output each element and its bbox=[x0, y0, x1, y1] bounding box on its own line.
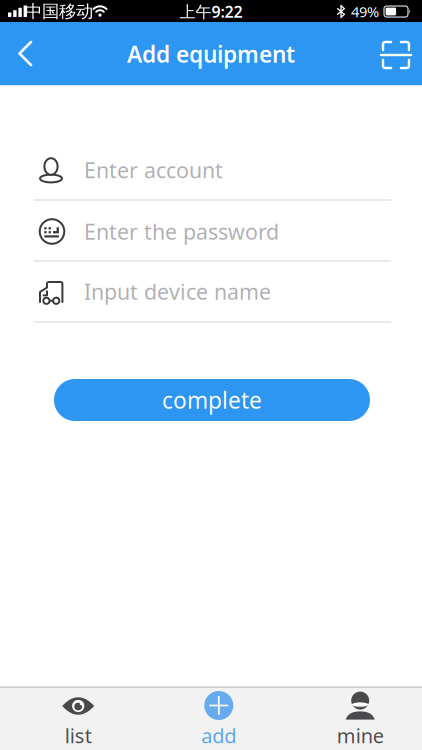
button[interactable]: Scan QR code bbox=[379, 38, 413, 72]
staticText: add bbox=[201, 722, 236, 749]
button[interactable]: list bbox=[18, 686, 138, 750]
staticText: Input device name bbox=[84, 277, 271, 306]
button[interactable]: complete bbox=[54, 379, 370, 421]
staticText: mine bbox=[337, 722, 384, 749]
staticText: Enter account bbox=[84, 156, 223, 184]
staticText: 上午9:22 bbox=[179, 1, 242, 22]
staticText: Add equipment bbox=[127, 39, 295, 69]
staticText: complete bbox=[162, 385, 262, 415]
button[interactable]: Enter account bbox=[0, 140, 422, 200]
button[interactable]: Enter the password bbox=[0, 201, 422, 261]
button[interactable]: add bbox=[159, 686, 279, 750]
staticText: Enter the password bbox=[84, 217, 279, 246]
staticText: list bbox=[65, 722, 92, 749]
staticText: 中国移动 bbox=[25, 1, 93, 22]
staticText: 49% bbox=[351, 2, 379, 21]
button[interactable]: Back bbox=[3, 32, 47, 75]
button[interactable]: Input device name bbox=[0, 261, 422, 321]
button[interactable]: mine bbox=[300, 686, 420, 750]
